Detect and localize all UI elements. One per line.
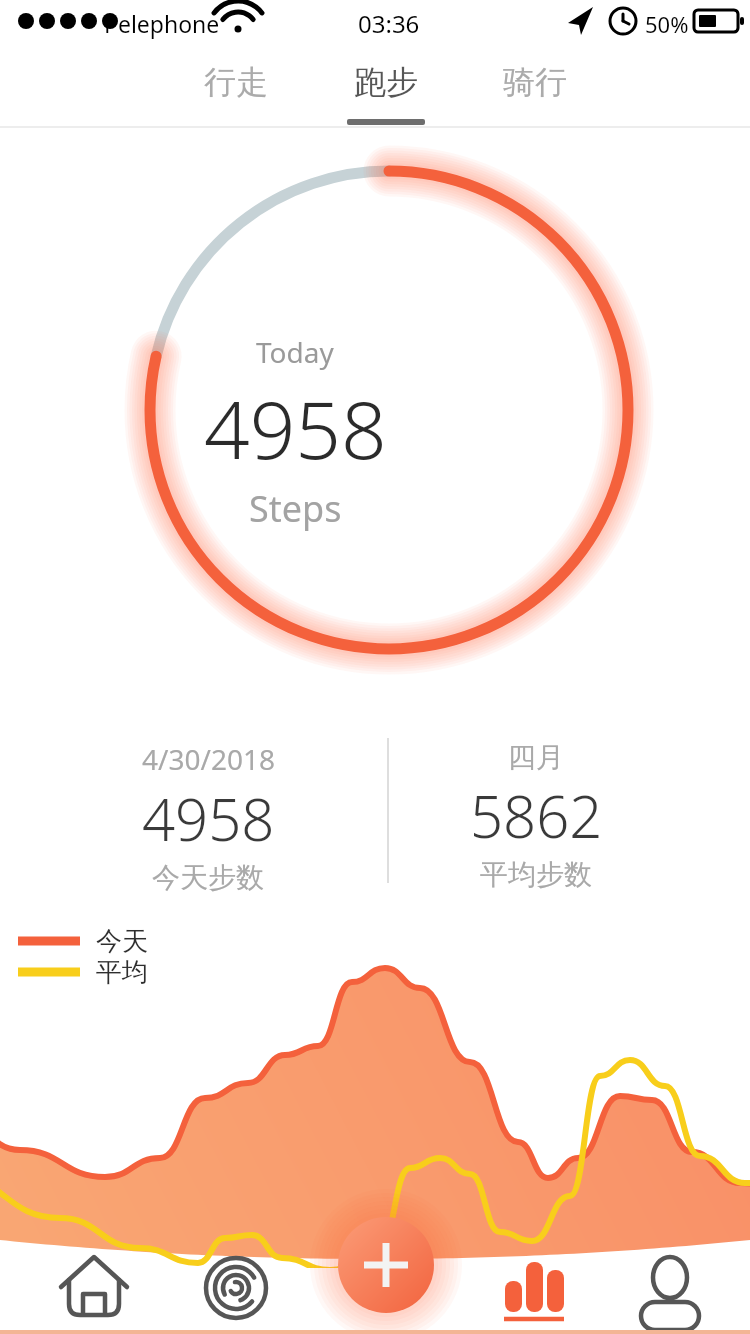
staticText: Pelephone (104, 8, 220, 39)
button[interactable]: Add (332, 1211, 440, 1319)
staticText: 行走 (204, 62, 268, 102)
staticText: 4958 (142, 779, 275, 858)
button[interactable]: 跑步 (311, 50, 461, 120)
button[interactable]: 四月 (396, 740, 676, 889)
staticText: 四月 (508, 740, 564, 775)
staticText: 骑行 (503, 62, 567, 102)
staticText: 今天 (96, 925, 148, 958)
staticText: 今天步数 (152, 860, 264, 895)
staticText: 平均 (96, 956, 148, 989)
staticText: 平均步数 (480, 857, 592, 892)
button[interactable]: 行走 (161, 50, 311, 120)
staticText: Steps (249, 484, 342, 533)
button[interactable]: 4/30/2018 (68, 740, 348, 892)
button[interactable]: Home (32, 1242, 156, 1334)
button[interactable]: 骑行 (460, 50, 610, 120)
button[interactable]: Activity (174, 1242, 298, 1334)
staticText: Today (256, 333, 334, 371)
staticText: 4958 (204, 373, 387, 482)
button[interactable]: Statistics (472, 1242, 596, 1334)
staticText: 03:36 (358, 7, 420, 40)
staticText: 5862 (470, 776, 603, 855)
button[interactable]: Profile (608, 1242, 732, 1334)
staticText: 跑步 (354, 62, 418, 102)
staticText: 50% (645, 9, 689, 39)
staticText: 4/30/2018 (142, 740, 275, 778)
